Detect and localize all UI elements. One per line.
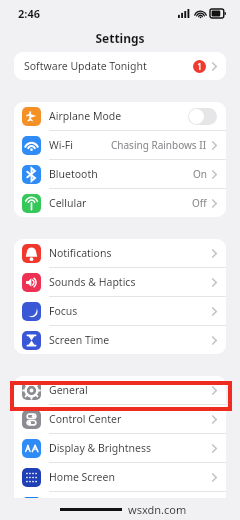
button[interactable]: Bluetooth bbox=[14, 160, 226, 188]
staticText: Screen Time bbox=[49, 333, 110, 347]
staticText: General bbox=[49, 383, 88, 397]
staticText: 1 bbox=[197, 61, 202, 72]
staticText: 2:46 bbox=[18, 6, 40, 21]
staticText: Display & Brightness bbox=[49, 441, 152, 455]
button[interactable]: Software Update Tonight bbox=[14, 52, 226, 80]
staticText: wsxdn.com bbox=[128, 502, 187, 517]
staticText: Control Center bbox=[49, 412, 122, 426]
staticText: Home Screen bbox=[49, 470, 115, 484]
staticText: Off bbox=[192, 196, 207, 210]
staticText: Focus bbox=[49, 304, 78, 318]
staticText: Accessibility bbox=[49, 499, 109, 513]
staticText: Airplane Mode bbox=[49, 109, 122, 123]
staticText: Chasing Rainbows II bbox=[111, 138, 207, 152]
button[interactable]: General bbox=[14, 376, 226, 404]
button[interactable]: Home Screen bbox=[14, 463, 226, 491]
button[interactable]: Accessibility bbox=[14, 492, 226, 520]
staticText: Notifications bbox=[49, 246, 112, 260]
button[interactable]: Display & Brightness bbox=[14, 434, 226, 462]
staticText: Settings bbox=[95, 30, 145, 46]
button[interactable]: Notifications bbox=[14, 239, 226, 267]
button[interactable]: Focus bbox=[14, 297, 226, 325]
button[interactable]: Sounds & Haptics bbox=[14, 268, 226, 296]
staticText: Wi-Fi bbox=[49, 138, 74, 152]
staticText: Software Update Tonight bbox=[24, 59, 147, 73]
button[interactable]: Airplane Mode bbox=[14, 102, 226, 130]
staticText: Cellular bbox=[49, 196, 87, 210]
button[interactable]: Wi-Fi bbox=[14, 131, 226, 159]
staticText: On bbox=[193, 167, 207, 181]
other: Airplane Mode toggle bbox=[188, 108, 217, 125]
button[interactable]: Control Center bbox=[14, 405, 226, 433]
button[interactable]: Screen Time bbox=[14, 326, 226, 354]
staticText: Sounds & Haptics bbox=[49, 275, 136, 289]
button[interactable]: Cellular bbox=[14, 189, 226, 217]
staticText: Bluetooth bbox=[49, 167, 98, 181]
